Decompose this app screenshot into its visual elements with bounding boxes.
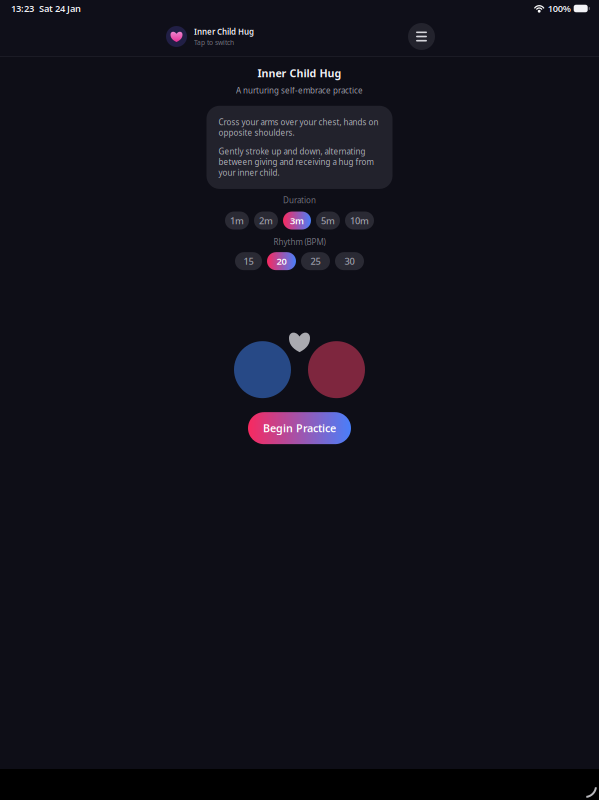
button[interactable]: 2m [254,211,278,229]
button[interactable]: 3m [283,211,311,229]
staticText: Rhythm (BPM) [273,236,325,247]
staticText: Sat 24 Jan [39,2,81,15]
staticText: 20 [276,255,286,267]
staticText: 3m [290,214,304,227]
staticText: 30 [344,255,354,267]
staticText: 25 [310,255,320,267]
button[interactable]: 5m [316,211,340,229]
button[interactable]: Menu [408,23,435,50]
staticText: Duration [283,195,316,205]
button[interactable]: 10m [345,211,374,229]
button[interactable]: Begin Practice [248,412,351,444]
staticText: A nurturing self-embrace practice [236,85,363,96]
staticText: 10m [350,214,369,227]
staticText: 1m [230,214,244,227]
staticText: Inner Child Hug [194,26,254,37]
staticText: Tap to switch [194,38,234,47]
button[interactable]: 30 [335,252,364,270]
staticText: 15 [243,255,253,267]
staticText: Gently stroke up and down, alternating b… [218,146,373,178]
button[interactable]: Inner Child Hug [166,26,254,47]
button[interactable]: 1m [225,211,249,229]
staticText: 2m [259,214,273,227]
staticText: 5m [321,214,335,227]
button[interactable]: 25 [301,252,330,270]
button[interactable]: 15 [235,252,262,270]
staticText: Cross your arms over your chest, hands o… [218,117,378,138]
staticText: 100% [548,2,571,15]
staticText: Inner Child Hug [257,66,341,80]
staticText: 13:23 [11,2,34,15]
staticText: Begin Practice [263,421,336,435]
button[interactable]: 20 [267,252,296,270]
